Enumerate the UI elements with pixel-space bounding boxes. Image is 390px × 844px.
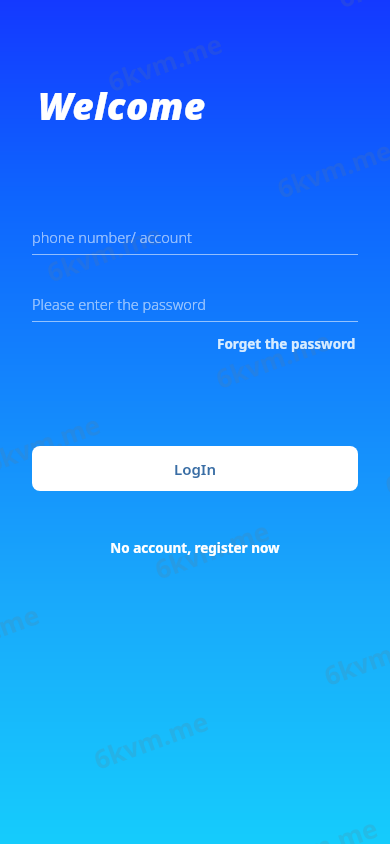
button[interactable]: No account, register now (100, 533, 290, 563)
staticText: phone number/ account (32, 227, 192, 247)
button[interactable]: Forget the password (215, 330, 358, 358)
button[interactable]: phone number/ account (32, 222, 358, 255)
button[interactable]: Please enter the password (32, 289, 358, 322)
staticText: Please enter the password (32, 294, 206, 314)
staticText: Welcome (38, 80, 206, 130)
staticText: LogIn (174, 459, 216, 479)
staticText: No account, register now (110, 539, 280, 557)
button[interactable]: LogIn (32, 446, 358, 491)
staticText: Forget the password (217, 335, 356, 353)
